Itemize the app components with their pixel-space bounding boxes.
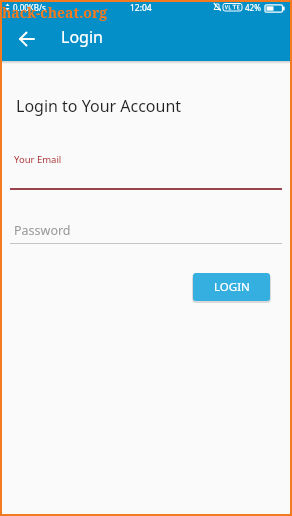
button[interactable]: LOGIN xyxy=(193,273,270,301)
staticText: Login to Your Account xyxy=(16,95,182,117)
button[interactable] xyxy=(13,25,41,53)
staticText: 42% xyxy=(245,2,261,13)
staticText: 12:04 xyxy=(130,2,152,14)
staticText: 0.00KB/s xyxy=(13,2,46,13)
staticText: LOGIN xyxy=(214,279,250,295)
staticText: hack-cheat.org xyxy=(2,3,108,22)
button[interactable]: Your Email xyxy=(10,146,282,191)
staticText: Your Email xyxy=(14,153,62,166)
staticText: Login xyxy=(61,26,103,48)
staticText: Password xyxy=(14,222,71,239)
button[interactable]: Password xyxy=(10,220,282,246)
